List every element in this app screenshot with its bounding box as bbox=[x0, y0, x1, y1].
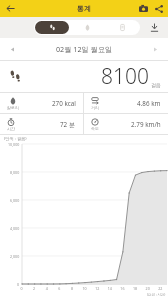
staticText: 4.86 km bbox=[137, 99, 161, 108]
staticText: 통계 bbox=[77, 4, 91, 13]
staticText: 걸음 bbox=[151, 82, 161, 88]
button[interactable]: Camera bbox=[136, 1, 151, 16]
button[interactable]: 시간 bbox=[0, 114, 83, 134]
staticText: 속도 bbox=[91, 126, 99, 131]
button[interactable] bbox=[71, 21, 104, 34]
button[interactable]: 칼로리 bbox=[0, 93, 83, 113]
staticText: (단위 : 걸음) bbox=[4, 136, 27, 142]
button[interactable] bbox=[35, 21, 69, 34]
button[interactable]: Share bbox=[151, 1, 166, 16]
staticText: 거리 bbox=[91, 105, 99, 110]
button[interactable]: Next day bbox=[148, 42, 163, 57]
staticText: 270 kcal bbox=[52, 99, 76, 108]
button[interactable] bbox=[106, 21, 139, 34]
button[interactable]: 거리 bbox=[84, 93, 168, 113]
button[interactable]: 8100 bbox=[0, 61, 168, 92]
staticText: 02월 12일 월요일 bbox=[56, 44, 113, 54]
button[interactable]: Back bbox=[3, 1, 18, 16]
button[interactable]: 속도 bbox=[84, 114, 168, 134]
staticText: 2.79 km/h bbox=[131, 120, 161, 129]
button[interactable]: Download bbox=[147, 20, 162, 35]
button[interactable]: Previous day bbox=[5, 42, 20, 57]
staticText: 칼로리 bbox=[7, 105, 19, 110]
staticText: 시간 bbox=[7, 126, 15, 131]
staticText: 72 분 bbox=[60, 120, 76, 129]
staticText: 8100 bbox=[101, 62, 149, 91]
